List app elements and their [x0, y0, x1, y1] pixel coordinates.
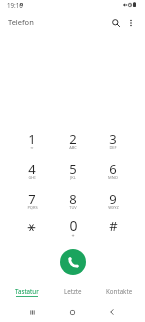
- staticText: 5: [69, 160, 77, 178]
- staticText: JKL: [70, 175, 76, 180]
- staticText: 1: [28, 130, 36, 148]
- button[interactable]: Letzte: [49, 283, 97, 299]
- button[interactable]: Tastatur: [0, 283, 49, 299]
- staticText: DEF: [109, 145, 117, 150]
- button[interactable]: #: [93, 218, 133, 248]
- staticText: Kontakte: [106, 287, 133, 295]
- button[interactable]: Home: [62, 302, 82, 322]
- button[interactable]: Recent apps: [22, 302, 42, 322]
- staticText: Letzte: [64, 287, 82, 295]
- button[interactable]: 2: [53, 128, 93, 158]
- button[interactable]: Back: [102, 302, 122, 322]
- staticText: ∞: [30, 145, 34, 150]
- button[interactable]: Search: [107, 14, 124, 31]
- button[interactable]: 5: [53, 158, 93, 188]
- staticText: GHI: [28, 175, 36, 180]
- button[interactable]: More options: [122, 14, 139, 31]
- staticText: MNO: [108, 175, 118, 180]
- button[interactable]: 0: [53, 218, 93, 248]
- button[interactable]: 7: [12, 188, 52, 218]
- staticText: 0: [69, 216, 78, 235]
- button[interactable]: 3: [93, 128, 133, 158]
- button[interactable]: Kontakte: [97, 283, 145, 299]
- staticText: 4: [28, 160, 36, 178]
- button[interactable]: 8: [53, 188, 93, 218]
- button[interactable]: 4: [12, 158, 52, 188]
- button[interactable]: 9: [93, 188, 133, 218]
- staticText: 9: [109, 190, 117, 208]
- staticText: 3: [109, 130, 117, 148]
- staticText: ABC: [69, 145, 77, 150]
- staticText: Tastatur: [15, 287, 39, 295]
- staticText: WXYZ: [108, 205, 119, 210]
- staticText: TUV: [69, 205, 77, 210]
- button[interactable]: Call: [60, 249, 86, 275]
- button[interactable]: 6: [93, 158, 133, 188]
- button[interactable]: 1: [12, 128, 52, 158]
- staticText: 6: [109, 160, 117, 178]
- staticText: +: [71, 232, 75, 239]
- staticText: PQRS: [27, 205, 38, 210]
- button[interactable]: [12, 218, 52, 248]
- staticText: #: [109, 217, 118, 235]
- staticText: 8: [69, 190, 77, 208]
- staticText: Telefon: [8, 17, 34, 27]
- staticText: 7: [28, 190, 36, 208]
- staticText: 19:10: [7, 1, 23, 9]
- staticText: 2: [69, 130, 77, 148]
